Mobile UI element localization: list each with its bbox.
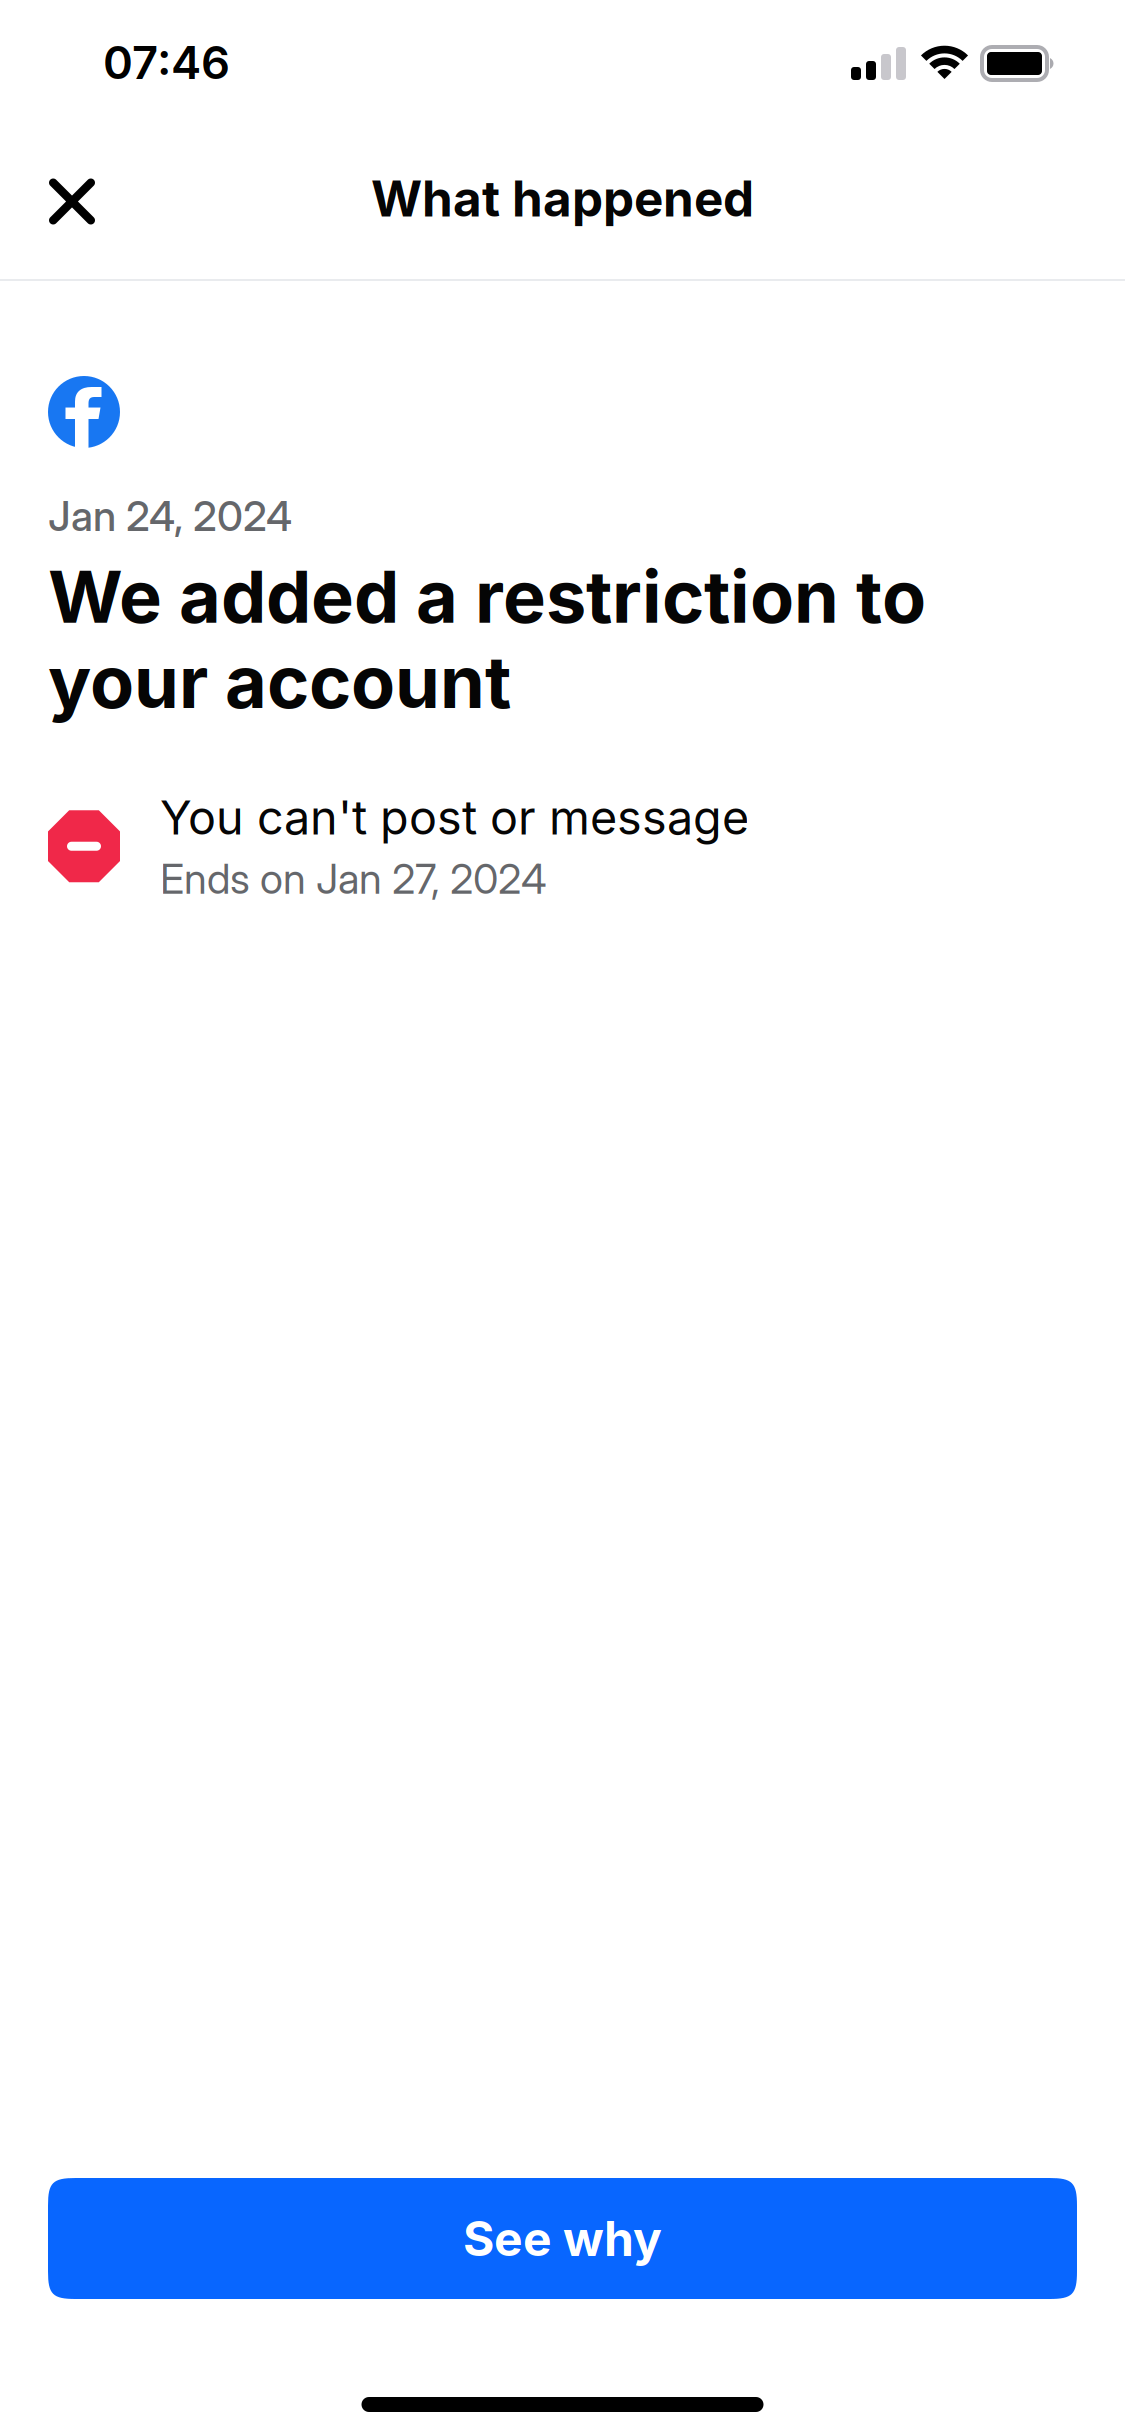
button[interactable]: Close: [0, 132, 144, 264]
staticText: What happened: [371, 169, 754, 228]
staticText: Jan 24, 2024: [48, 491, 292, 541]
staticText: See why: [463, 2209, 662, 2268]
button[interactable]: See why: [48, 2178, 1077, 2299]
staticText: Ends on Jan 27, 2024: [160, 854, 547, 904]
staticText: You can't post or message: [160, 789, 749, 846]
staticText: 07:46: [103, 35, 230, 90]
staticText: We added a restriction to your account: [48, 553, 926, 725]
